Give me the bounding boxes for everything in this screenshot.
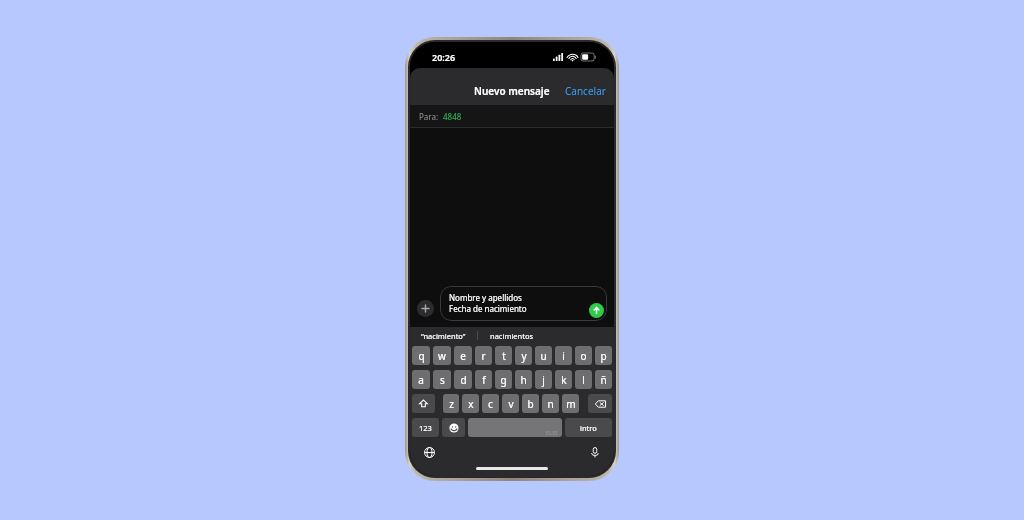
staticText: Fecha de nacimiento [449,303,527,314]
staticText: nacimientos [490,331,534,341]
button[interactable]: Para: [410,105,614,127]
button[interactable]: Emoji [442,418,465,437]
button[interactable]: Send [589,303,604,318]
staticText: q [418,349,425,363]
staticText: p [600,349,607,363]
button[interactable]: k [555,370,572,389]
button[interactable]: f [475,370,492,389]
button[interactable]: Space [468,418,562,437]
staticText: d [460,373,467,387]
button[interactable]: u [535,346,552,365]
staticText: ñ [600,373,607,387]
button[interactable]: Backspace [588,394,612,413]
button[interactable]: z [443,394,459,413]
staticText: a [418,373,424,387]
button[interactable]: y [515,346,532,365]
staticText: e [460,349,466,363]
staticText: 123 [419,423,432,433]
staticText: Nombre y apellidos [449,292,522,303]
staticText: u [540,349,547,363]
button[interactable]: r [475,346,492,365]
staticText: o [580,349,587,363]
button[interactable]: v [502,394,519,413]
staticText: k [561,373,567,387]
staticText: m [566,397,576,411]
button[interactable]: “nacimiento” [410,327,477,344]
button[interactable]: x [462,394,479,413]
button[interactable]: b [522,394,539,413]
staticText: j [542,373,545,387]
staticText: b [527,397,534,411]
staticText: Nuevo mensaje [474,84,550,98]
button[interactable]: Shift [412,394,435,413]
button[interactable]: nacimientos [478,327,546,344]
staticText: 4848 [443,111,462,122]
button[interactable]: h [515,370,532,389]
button[interactable]: g [495,370,512,389]
staticText: s [440,373,445,387]
staticText: x [468,397,474,411]
button[interactable]: Dictate [586,443,604,461]
staticText: c [488,397,493,411]
button[interactable]: ñ [595,370,612,389]
button[interactable]: Add attachment [417,300,434,317]
button[interactable]: w [433,346,451,365]
button[interactable]: t [495,346,512,365]
staticText: Cancelar [565,84,606,98]
button[interactable]: i [555,346,572,365]
button[interactable]: p [595,346,612,365]
staticText: Para: [419,111,439,122]
staticText: g [500,373,507,387]
staticText: 20:26 [432,51,456,63]
button[interactable]: n [542,394,559,413]
button[interactable]: Nombre y apellidos [440,286,607,321]
staticText: y [521,349,527,363]
staticText: w [438,349,446,363]
button[interactable]: Cancelar [557,80,614,102]
staticText: l [582,373,585,387]
button[interactable]: j [535,370,552,389]
button[interactable]: Change keyboard language [420,443,438,461]
button[interactable]: intro [565,418,612,437]
staticText: f [482,373,486,387]
staticText: ES-ES [546,430,558,436]
staticText: t [502,349,506,363]
staticText: r [481,349,486,363]
button[interactable]: l [575,370,592,389]
button[interactable]: d [454,370,472,389]
staticText: h [520,373,527,387]
button[interactable]: o [575,346,592,365]
staticText: v [508,397,514,411]
button[interactable]: s [433,370,451,389]
button[interactable]: 123 [412,418,439,437]
button[interactable]: a [412,370,430,389]
staticText: intro [580,423,597,433]
staticText: z [449,397,454,411]
staticText: “nacimiento” [421,331,466,341]
staticText: i [562,349,565,363]
button[interactable]: m [562,394,579,413]
button[interactable]: c [482,394,499,413]
staticText: n [547,397,554,411]
button[interactable]: e [454,346,472,365]
button[interactable]: q [412,346,430,365]
